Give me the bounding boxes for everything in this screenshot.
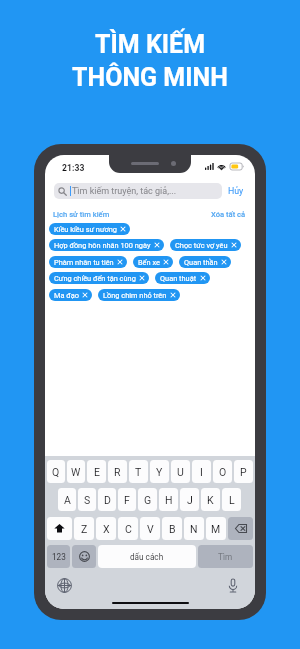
button[interactable]: Xóa tất cả (211, 210, 246, 219)
staticText: E (94, 466, 100, 478)
staticText: D (104, 494, 111, 506)
staticText: A (64, 494, 71, 506)
button[interactable]: Tìm kiếm truyện, tác giả,... (54, 183, 222, 199)
staticText: G (144, 494, 152, 506)
button[interactable]: Tìm (198, 545, 253, 568)
staticText: I (200, 466, 203, 478)
button[interactable]: R (108, 460, 127, 483)
button[interactable]: Chọc tức vợ yêu (170, 239, 241, 251)
staticText: Chọc tức vợ yêu (175, 241, 228, 250)
button[interactable]: G (138, 488, 157, 511)
button[interactable]: E (87, 460, 106, 483)
staticText: THÔNG MINH (72, 63, 228, 92)
staticText: Tìm kiếm truyện, tác giả,... (72, 186, 177, 197)
button[interactable]: O (213, 460, 232, 483)
button[interactable]: Change keyboard language (56, 577, 72, 593)
staticText: Hợp đồng hôn nhân 100 ngày (54, 241, 151, 250)
staticText: B (169, 523, 176, 535)
staticText: Q (52, 466, 60, 478)
button[interactable]: Voice input (225, 577, 241, 593)
staticText: Kiều kiều sư nương (54, 225, 117, 234)
staticText: Z (81, 523, 88, 535)
staticText: Quan thuật (160, 274, 197, 283)
button[interactable]: dấu cách (98, 545, 196, 568)
staticText: 21:33 (62, 163, 85, 173)
staticText: P (240, 466, 247, 478)
staticText: N (190, 523, 198, 535)
staticText: Xóa tất cả (211, 210, 246, 219)
staticText: H (165, 494, 173, 506)
button[interactable]: A (58, 488, 76, 511)
staticText: Lịch sử tìm kiếm (53, 210, 110, 219)
button[interactable]: Shift (47, 517, 72, 540)
staticText: S (84, 494, 91, 506)
staticText: Bến xe (138, 258, 160, 267)
button[interactable]: C (118, 517, 138, 540)
button[interactable]: Cưng chiều đến tận cùng (49, 272, 149, 284)
button[interactable]: D (98, 488, 116, 511)
staticText: X (103, 523, 110, 535)
button[interactable]: Phàm nhân tu tiên (49, 256, 127, 268)
staticText: K (207, 494, 214, 506)
staticText: O (219, 466, 227, 478)
staticText: Y (156, 466, 163, 478)
button[interactable]: Bến xe (133, 256, 173, 268)
staticText: R (114, 466, 121, 478)
staticText: M (211, 523, 221, 535)
button[interactable]: P (234, 460, 253, 483)
button[interactable]: I (192, 460, 211, 483)
button[interactable]: Quan thần (179, 256, 231, 268)
staticText: L (229, 494, 235, 506)
button[interactable]: Kiều kiều sư nương (49, 223, 130, 235)
button[interactable]: B (162, 517, 182, 540)
button[interactable]: Y (150, 460, 169, 483)
staticText: Hủy (228, 186, 244, 196)
staticText: Phàm nhân tu tiên (54, 258, 114, 267)
staticText: dấu cách (130, 552, 164, 562)
button[interactable]: W (67, 460, 85, 483)
button[interactable]: N (184, 517, 204, 540)
staticText: Quan thần (184, 258, 218, 267)
staticText: Lồng chim nhỏ trên (103, 291, 167, 300)
button[interactable]: Quan thuật (155, 272, 210, 284)
staticText: T (135, 466, 142, 478)
button[interactable]: Hợp đồng hôn nhân 100 ngày (49, 239, 164, 251)
button[interactable]: V (140, 517, 160, 540)
button[interactable]: 123 (47, 545, 70, 568)
staticText: J (187, 494, 193, 506)
button[interactable]: X (96, 517, 116, 540)
staticText: W (71, 466, 81, 478)
button[interactable]: Ma đạo (49, 289, 92, 301)
button[interactable]: Z (74, 517, 94, 540)
staticText: TÌM KIẾM (95, 30, 206, 59)
button[interactable]: H (159, 488, 178, 511)
button[interactable]: Hủy (228, 186, 244, 196)
staticText: V (147, 523, 154, 535)
staticText: U (177, 466, 184, 478)
button[interactable]: T (129, 460, 148, 483)
button[interactable]: K (201, 488, 220, 511)
button[interactable]: J (180, 488, 199, 511)
staticText: C (125, 523, 132, 535)
staticText: F (124, 494, 130, 506)
staticText: Ma đạo (54, 291, 79, 300)
button[interactable]: Emoji (72, 545, 96, 568)
button[interactable]: F (118, 488, 136, 511)
staticText: 123 (52, 552, 66, 562)
button[interactable]: L (222, 488, 241, 511)
staticText: Cưng chiều đến tận cùng (54, 274, 136, 283)
button[interactable]: U (171, 460, 190, 483)
staticText: Tìm (218, 552, 233, 562)
button[interactable]: Lồng chim nhỏ trên (98, 289, 180, 301)
button[interactable]: Backspace (228, 517, 253, 540)
button[interactable]: M (206, 517, 226, 540)
button[interactable]: S (78, 488, 96, 511)
button[interactable]: Q (47, 460, 65, 483)
